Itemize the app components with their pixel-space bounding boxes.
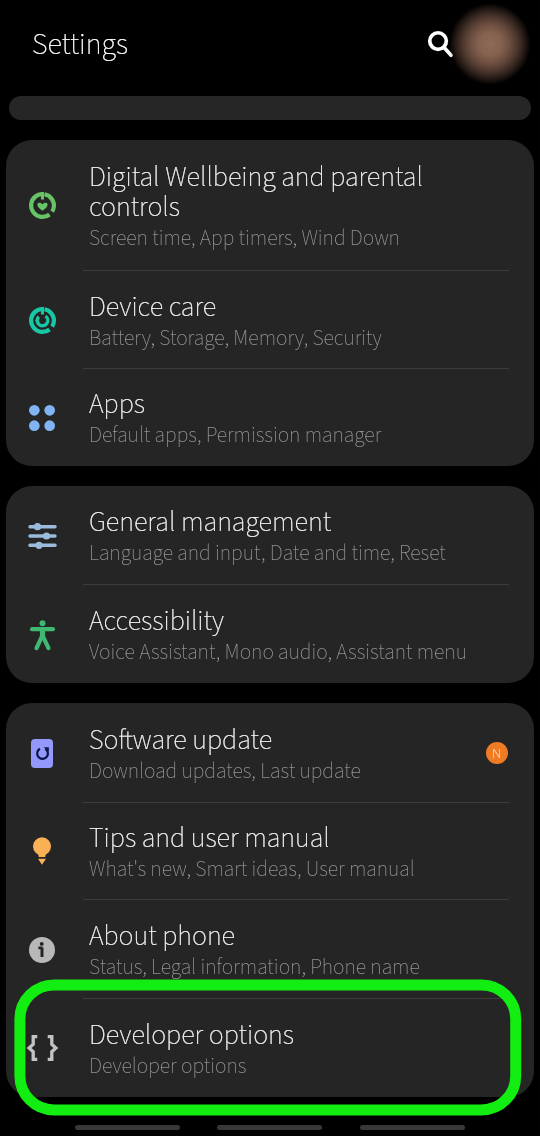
staticText: Developer options — [89, 1051, 247, 1082]
staticText: Status, Legal information, Phone name — [89, 952, 420, 983]
staticText: Default apps, Permission manager — [89, 420, 382, 451]
button[interactable]: General management — [6, 486, 534, 585]
button[interactable]: Accessibility — [6, 585, 534, 683]
staticText: Tips and user manual — [89, 818, 330, 858]
staticText: Developer options — [89, 1015, 295, 1055]
button[interactable]: Digital Wellbeing and parental controls — [6, 140, 534, 271]
staticText: Digital Wellbeing and parental controls — [89, 157, 423, 227]
staticText: Language and input, Date and time, Reset — [89, 538, 446, 569]
button[interactable]: Account — [456, 10, 524, 78]
staticText: Apps — [89, 384, 146, 424]
staticText: Screen time, App timers, Wind Down — [89, 223, 400, 254]
staticText: What's new, Smart ideas, User manual — [89, 854, 415, 885]
button[interactable]: Developer options — [6, 999, 534, 1097]
staticText: Accessibility — [89, 601, 224, 641]
button[interactable]: About phone — [6, 900, 534, 999]
staticText: Settings — [32, 23, 128, 66]
button[interactable]: Device care — [6, 271, 534, 369]
staticText: Battery, Storage, Memory, Security — [89, 323, 382, 354]
button[interactable]: Search settings — [9, 96, 531, 120]
button[interactable]: Apps — [6, 369, 534, 466]
staticText: About phone — [89, 916, 235, 956]
staticText: Download updates, Last update — [89, 756, 361, 787]
staticText: General management — [89, 502, 332, 542]
staticText: Voice Assistant, Mono audio, Assistant m… — [89, 637, 467, 668]
staticText: N — [492, 743, 502, 764]
staticText: Software update — [89, 720, 273, 760]
button[interactable]: Software update — [6, 703, 534, 803]
staticText: Device care — [89, 287, 217, 327]
button[interactable]: Tips and user manual — [6, 803, 534, 900]
button[interactable]: Search — [418, 22, 462, 66]
